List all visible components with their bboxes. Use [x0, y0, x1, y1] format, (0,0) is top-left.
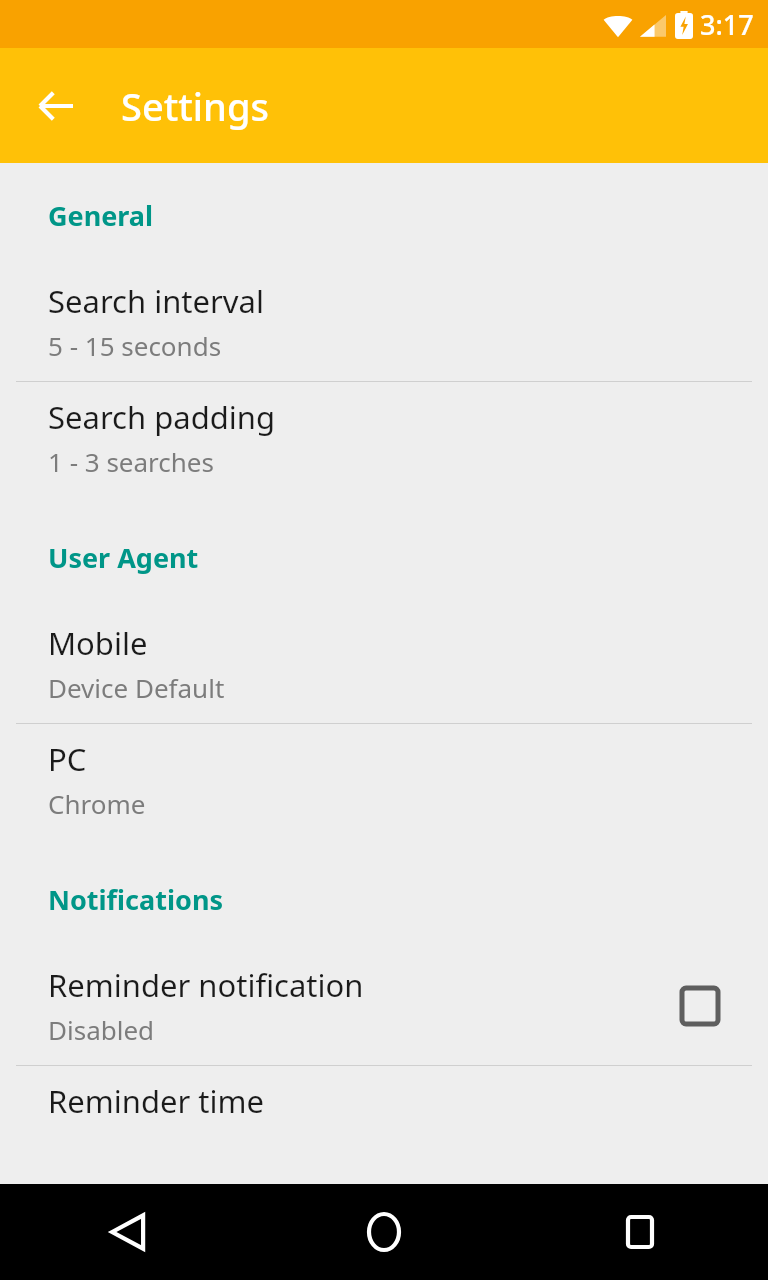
- button[interactable]: Search interval: [0, 266, 768, 381]
- button[interactable]: PC: [0, 724, 768, 839]
- staticText: General: [48, 197, 154, 234]
- button[interactable]: Home: [256, 1184, 512, 1280]
- button[interactable]: Back: [0, 1184, 256, 1280]
- staticText: 5 - 15 seconds: [48, 328, 222, 363]
- staticText: Search padding: [48, 396, 275, 438]
- staticText: Mobile: [48, 622, 148, 664]
- staticText: Notifications: [48, 881, 223, 918]
- staticText: Reminder notification: [48, 964, 364, 1006]
- staticText: PC: [48, 738, 87, 780]
- staticText: Chrome: [48, 786, 146, 821]
- button[interactable]: Recent apps: [512, 1184, 768, 1280]
- button[interactable]: Back: [24, 74, 88, 138]
- staticText: 3:17: [700, 6, 754, 43]
- button[interactable]: Mobile: [0, 608, 768, 723]
- staticText: User Agent: [48, 539, 199, 576]
- button[interactable]: Reminder time: [0, 1066, 768, 1140]
- button[interactable]: Reminder notification toggle: [672, 978, 728, 1034]
- button[interactable]: Reminder notification: [0, 950, 768, 1065]
- staticText: Search interval: [48, 280, 264, 322]
- staticText: Device Default: [48, 670, 225, 705]
- staticText: Reminder time: [48, 1080, 264, 1122]
- staticText: Disabled: [48, 1012, 155, 1047]
- button[interactable]: Search padding: [0, 382, 768, 497]
- staticText: 1 - 3 searches: [48, 444, 214, 479]
- staticText: Settings: [121, 80, 269, 132]
